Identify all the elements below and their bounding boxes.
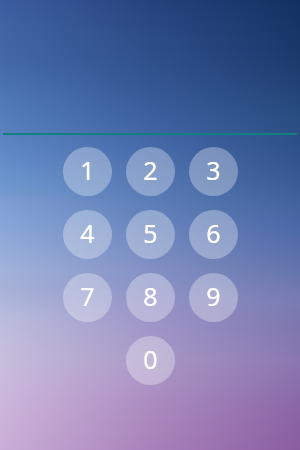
button[interactable]: 6 <box>189 210 238 259</box>
button[interactable]: 1 <box>63 147 112 196</box>
button[interactable]: 5 <box>126 210 175 259</box>
button[interactable]: 9 <box>189 273 238 322</box>
staticText: 3 <box>206 153 221 187</box>
staticText: 9 <box>206 279 221 313</box>
button[interactable]: 0 <box>126 336 175 385</box>
staticText: 6 <box>206 216 221 250</box>
button[interactable]: 8 <box>126 273 175 322</box>
staticText: 4 <box>80 216 95 250</box>
button[interactable]: 2 <box>126 147 175 196</box>
button[interactable]: 4 <box>63 210 112 259</box>
staticText: 8 <box>143 279 158 313</box>
button[interactable]: 7 <box>63 273 112 322</box>
button[interactable]: 3 <box>189 147 238 196</box>
staticText: 1 <box>80 153 95 187</box>
staticText: 7 <box>80 279 95 313</box>
staticText: 2 <box>143 153 158 187</box>
staticText: 5 <box>143 216 158 250</box>
staticText: 0 <box>143 342 158 376</box>
